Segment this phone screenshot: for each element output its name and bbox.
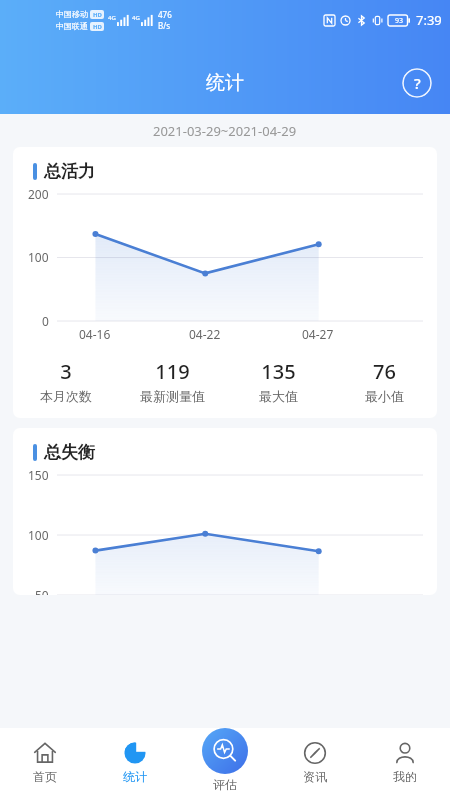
staticText: 0 (42, 313, 49, 329)
button[interactable]: 我的 (360, 728, 450, 800)
staticText: 2021-03-29~2021-04-29 (153, 122, 297, 140)
button[interactable]: 76 (331, 358, 437, 404)
staticText: 100 (28, 249, 49, 265)
staticText: B/s (158, 20, 171, 31)
staticText: 我的 (393, 769, 417, 784)
button[interactable]: 3 (13, 358, 119, 404)
button[interactable]: 资讯 (270, 728, 360, 800)
staticText: 100 (28, 527, 49, 543)
button[interactable]: Help (402, 68, 432, 98)
button[interactable]: 119 (119, 358, 225, 404)
staticText: 资讯 (303, 769, 327, 784)
staticText: 04-27 (302, 326, 334, 342)
staticText: 135 (261, 358, 296, 385)
staticText: 476 (158, 9, 172, 20)
button[interactable]: 135 (225, 358, 331, 404)
staticText: 统计 (123, 769, 147, 784)
staticText: 统计 (206, 71, 244, 95)
staticText: 150 (28, 467, 49, 483)
staticText: 93 (395, 16, 404, 26)
button[interactable]: 首页 (0, 728, 90, 800)
staticText: 7:39 (416, 11, 442, 29)
staticText: 最新测量值 (140, 388, 205, 404)
staticText: 4G (108, 14, 116, 22)
button[interactable]: 评估 (202, 728, 248, 774)
staticText: 本月次数 (40, 388, 92, 404)
staticText: 04-16 (79, 326, 111, 342)
staticText: ? (414, 73, 421, 93)
staticText: 04-22 (189, 326, 221, 342)
button[interactable]: 总活力 (13, 147, 437, 418)
staticText: 200 (28, 186, 49, 202)
staticText: 50 (35, 587, 49, 595)
staticText: HD (93, 23, 102, 31)
staticText: HD (93, 11, 102, 19)
staticText: 119 (155, 358, 190, 385)
staticText: 3 (60, 358, 72, 385)
staticText: 总活力 (44, 161, 95, 182)
staticText: 最大值 (259, 388, 298, 404)
staticText: 76 (373, 358, 396, 385)
staticText: 中国联通 (56, 21, 88, 31)
staticText: 首页 (33, 769, 57, 784)
staticText: 评估 (213, 777, 237, 792)
staticText: 4G (132, 14, 140, 22)
staticText: 最小值 (365, 388, 404, 404)
button[interactable]: 统计 (90, 728, 180, 800)
staticText: 总失衡 (44, 442, 95, 463)
staticText: 中国移动 (56, 9, 88, 19)
button[interactable]: 总失衡 (13, 428, 437, 595)
